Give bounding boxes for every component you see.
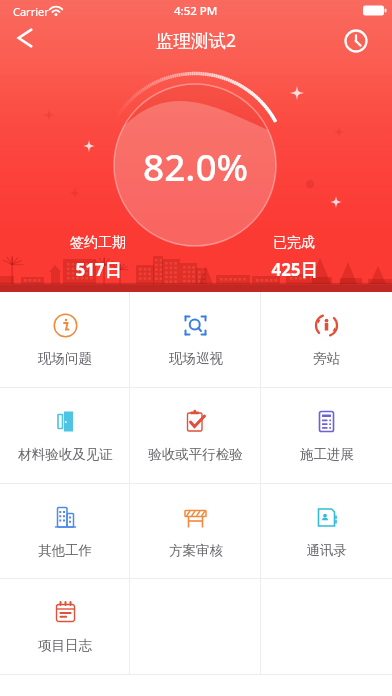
- staticText: 其他工作: [38, 542, 92, 559]
- button[interactable]: Back: [1, 22, 49, 53]
- button[interactable]: 现场巡视: [130, 292, 261, 388]
- staticText: 方案审核: [169, 542, 223, 559]
- staticText: 4:52 PM: [174, 3, 218, 19]
- staticText: 现场问题: [38, 350, 92, 367]
- staticText: 517日: [75, 258, 122, 281]
- button[interactable]: 现场问题: [0, 292, 130, 388]
- staticText: 验收或平行检验: [148, 446, 243, 463]
- staticText: 82.0%: [143, 141, 249, 191]
- staticText: 签约工期: [70, 234, 126, 252]
- button[interactable]: 项目日志: [0, 579, 130, 675]
- staticText: 现场巡视: [169, 350, 223, 367]
- button[interactable]: 旁站: [261, 292, 392, 388]
- button[interactable]: 通讯录: [261, 484, 392, 579]
- button[interactable]: 验收或平行检验: [130, 388, 261, 484]
- button[interactable]: 施工进展: [261, 388, 392, 484]
- button[interactable]: History: [342, 27, 370, 55]
- staticText: 旁站: [313, 350, 340, 367]
- staticText: 材料验收及见证: [18, 446, 113, 463]
- staticText: 施工进展: [300, 446, 354, 463]
- button[interactable]: 材料验收及见证: [0, 388, 130, 484]
- staticText: 已完成: [273, 234, 315, 252]
- button[interactable]: 方案审核: [130, 484, 261, 579]
- staticText: 监理测试2: [156, 28, 237, 52]
- staticText: 通讯录: [306, 542, 347, 559]
- staticText: Carrier: [13, 4, 49, 19]
- button[interactable]: 其他工作: [0, 484, 130, 579]
- staticText: 项目日志: [38, 637, 92, 654]
- staticText: 425日: [271, 258, 318, 281]
